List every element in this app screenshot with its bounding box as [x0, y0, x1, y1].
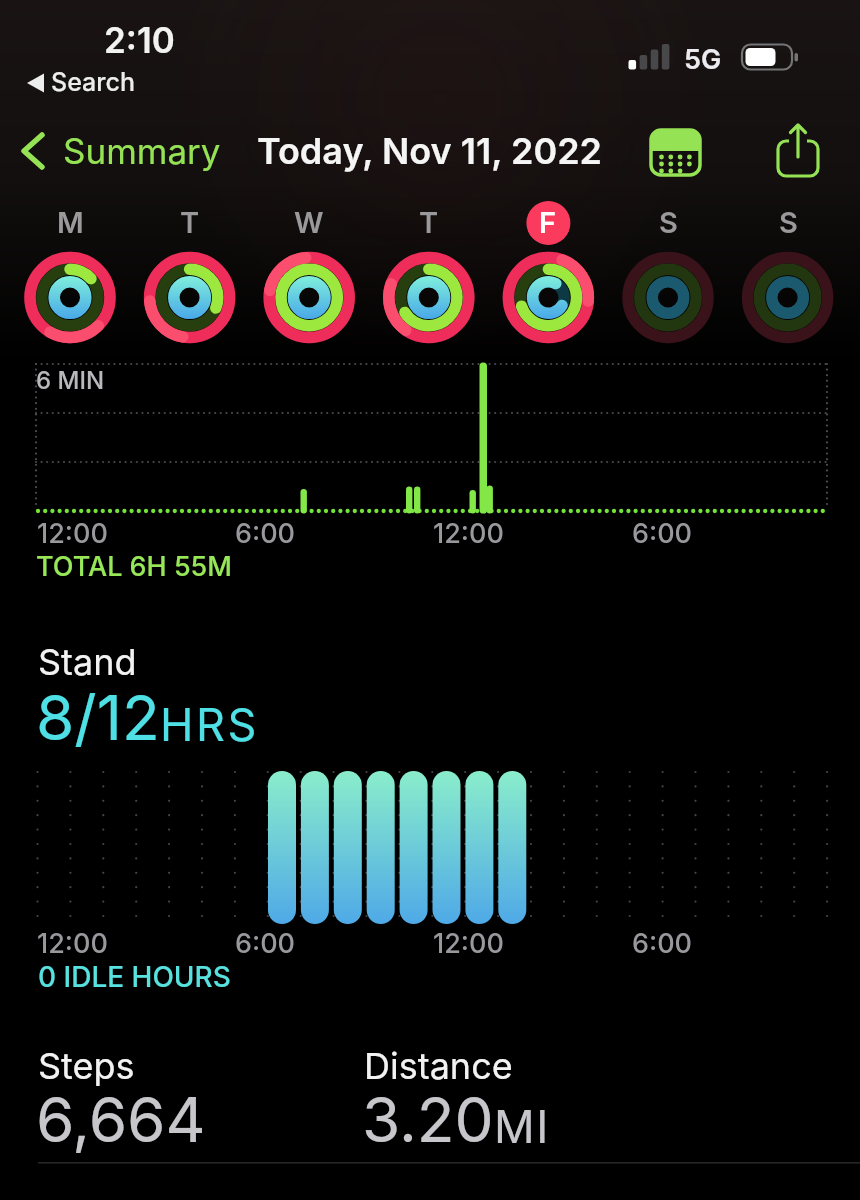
staticText: Distance: [364, 1044, 513, 1088]
staticText: 6,664: [36, 1082, 206, 1157]
staticText: Today, Nov 11, 2022: [257, 129, 603, 173]
staticText: Search: [51, 67, 135, 97]
staticText: M: [57, 205, 84, 240]
staticText: 12:00: [433, 517, 504, 550]
staticText: S: [779, 205, 798, 240]
button[interactable]: M: [13, 198, 127, 348]
staticText: 3.20: [362, 1082, 494, 1157]
staticText: Stand: [38, 640, 137, 684]
staticText: 6:00: [632, 517, 693, 550]
staticText: 12:00: [37, 927, 108, 960]
staticText: 12:00: [433, 927, 504, 960]
staticText: 6:00: [235, 517, 296, 550]
staticText: F: [539, 205, 557, 240]
staticText: HRS: [160, 697, 259, 751]
staticText: W: [294, 205, 324, 240]
staticText: T: [180, 205, 200, 240]
button[interactable]: [768, 116, 828, 182]
staticText: 6:00: [235, 927, 296, 960]
staticText: S: [659, 205, 678, 240]
staticText: MI: [494, 1099, 550, 1153]
staticText: Steps: [38, 1044, 135, 1088]
staticText: 8/12: [36, 680, 160, 755]
button[interactable]: T: [372, 198, 486, 348]
staticText: Summary: [63, 130, 221, 172]
staticText: 5G: [684, 43, 722, 76]
button[interactable]: [641, 122, 709, 182]
staticText: TOTAL 6H 55M: [36, 550, 232, 583]
staticText: T: [419, 205, 439, 240]
button[interactable]: S: [731, 198, 845, 348]
button[interactable]: W: [252, 198, 366, 348]
button[interactable]: F: [491, 198, 605, 348]
button[interactable]: S: [611, 198, 725, 348]
staticText: 6:00: [632, 927, 693, 960]
staticText: 2:10: [104, 19, 175, 61]
button[interactable]: Summary: [12, 120, 237, 182]
staticText: 6 MIN: [36, 366, 105, 395]
button[interactable]: T: [133, 198, 247, 348]
staticText: 0 IDLE HOURS: [38, 960, 231, 994]
staticText: 12:00: [37, 517, 108, 550]
